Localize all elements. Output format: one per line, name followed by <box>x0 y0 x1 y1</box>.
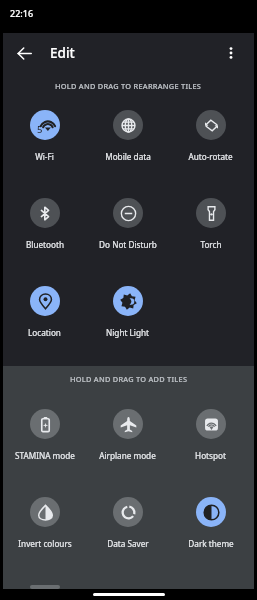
staticText: Mobile data <box>105 151 151 162</box>
staticText: Night Light <box>106 327 149 338</box>
button[interactable]: 5 <box>3 110 86 168</box>
button[interactable]: Torch <box>169 198 252 256</box>
staticText: Wi-Fi <box>35 151 54 162</box>
staticText: Edit <box>50 44 75 62</box>
button[interactable]: Dark theme <box>169 497 252 555</box>
button[interactable]: Do Not Disturb <box>86 198 169 256</box>
staticText: STAMINA mode <box>15 450 75 461</box>
button[interactable]: Back <box>6 35 42 71</box>
staticText: Auto-rotate <box>188 151 233 162</box>
button[interactable]: Location <box>3 286 86 344</box>
staticText: Torch <box>200 239 222 250</box>
button[interactable]: Bluetooth <box>3 198 86 256</box>
staticText: Hotspot <box>195 450 226 461</box>
button[interactable]: More options <box>215 37 247 69</box>
staticText: Invert colours <box>18 538 72 549</box>
button[interactable]: More tiles <box>30 585 60 589</box>
button[interactable]: Data Saver <box>86 497 169 555</box>
staticText: 5 <box>37 123 43 136</box>
button[interactable]: Airplane mode <box>86 409 169 467</box>
staticText: HOLD AND DRAG TO REARRANGE TILES <box>55 81 202 91</box>
staticText: HOLD AND DRAG TO ADD TILES <box>70 374 188 384</box>
button[interactable]: Invert colours <box>3 497 86 555</box>
staticText: Dark theme <box>188 538 234 549</box>
button[interactable]: STAMINA mode <box>3 409 86 467</box>
staticText: Bluetooth <box>26 239 64 250</box>
button[interactable]: Night Light <box>86 286 169 344</box>
button[interactable]: Hotspot <box>169 409 252 467</box>
button[interactable]: Auto-rotate <box>169 110 252 168</box>
staticText: Do Not Disturb <box>99 239 157 250</box>
staticText: 22:16 <box>10 7 34 19</box>
staticText: Airplane mode <box>99 450 156 461</box>
staticText: Location <box>28 327 61 338</box>
button[interactable]: Mobile data <box>86 110 169 168</box>
staticText: Data Saver <box>107 538 149 549</box>
